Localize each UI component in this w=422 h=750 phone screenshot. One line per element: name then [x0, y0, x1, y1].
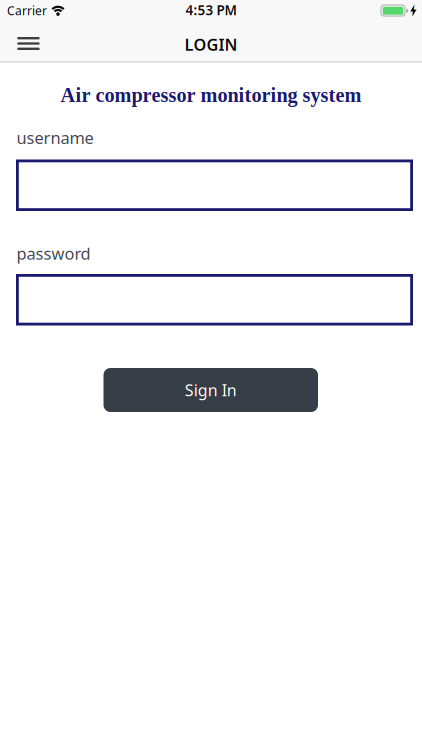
button[interactable] [11, 31, 46, 56]
staticText: password [16, 242, 90, 265]
staticText: Sign In [185, 379, 237, 401]
button[interactable]: Sign In [103, 368, 318, 412]
button[interactable] [16, 274, 413, 325]
staticText: LOGIN [184, 33, 237, 56]
staticText: 4:53 PM [185, 1, 236, 19]
staticText: username [16, 126, 93, 149]
staticText: Air compressor monitoring system [60, 84, 361, 106]
staticText: Carrier [7, 2, 47, 19]
button[interactable] [16, 159, 413, 211]
